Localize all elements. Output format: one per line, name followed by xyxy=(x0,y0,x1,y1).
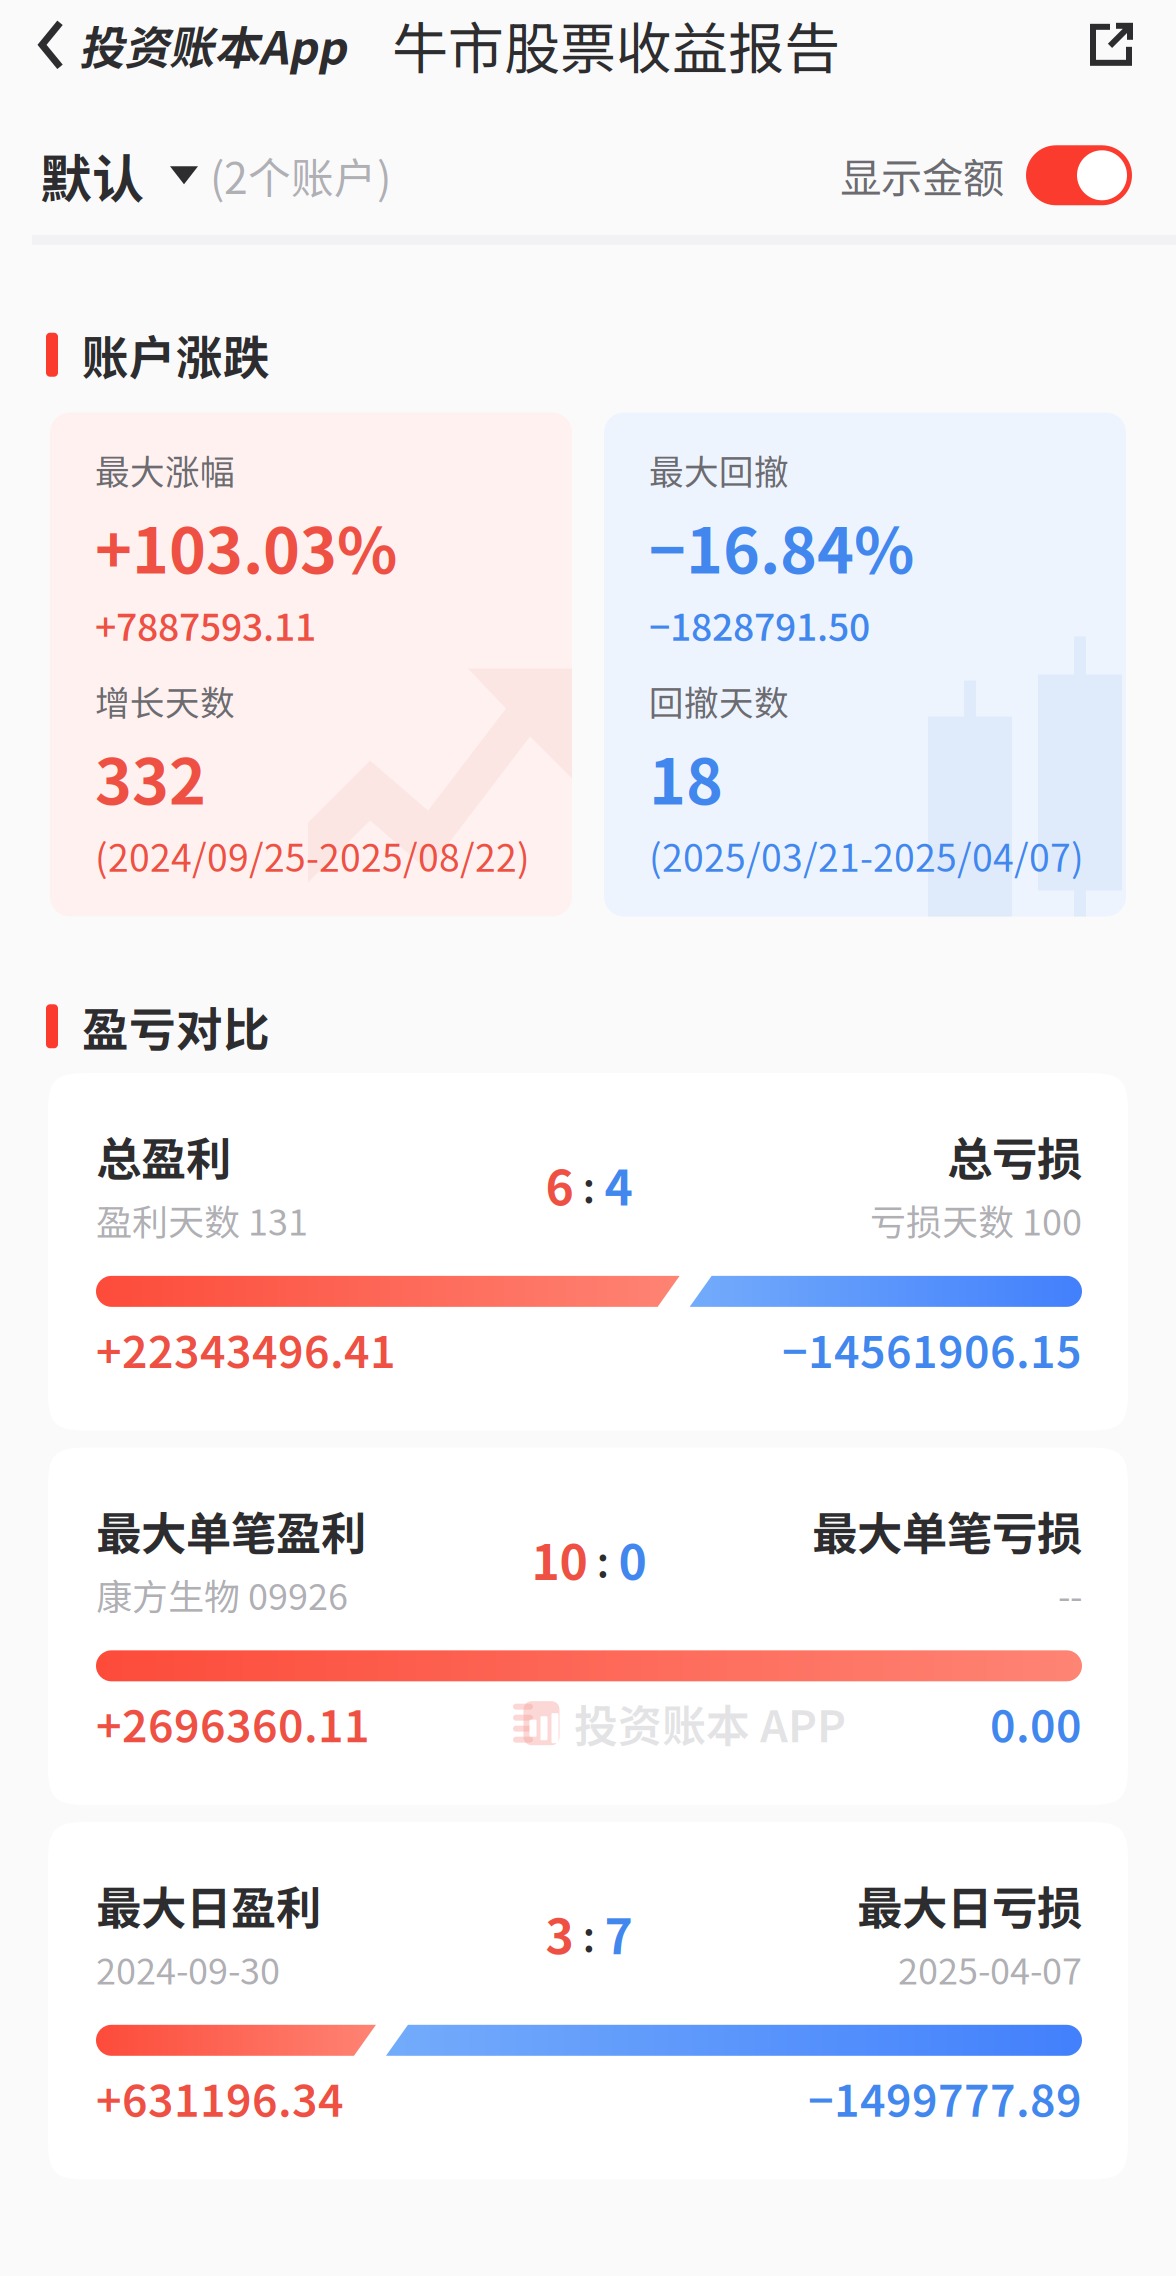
staticText: 2025-04-07 xyxy=(898,1943,1082,1995)
staticText: 最大单笔盈利 xyxy=(96,1498,366,1563)
staticText: −1499777.89 xyxy=(808,2066,1082,2129)
staticText: −1828791.50 xyxy=(649,597,870,652)
staticText: 4 xyxy=(604,1150,632,1219)
staticText: 7 xyxy=(604,1899,632,1968)
staticText: 投资账本App xyxy=(79,12,346,78)
button[interactable]: 默认 xyxy=(0,116,391,235)
button[interactable]: Share xyxy=(1064,6,1176,84)
staticText: 最大回撤 xyxy=(649,444,789,495)
staticText: 牛市股票收益报告 xyxy=(392,4,840,85)
staticText: 最大日亏损 xyxy=(857,1872,1082,1938)
staticText: -- xyxy=(1058,1568,1082,1620)
staticText: (2025/03/21-2025/04/07) xyxy=(649,828,1084,882)
button[interactable]: 显示金额 xyxy=(840,123,1176,227)
staticText: 亏损天数 100 xyxy=(870,1194,1082,1246)
button[interactable]: 投资账本App xyxy=(0,0,356,90)
staticText: 3 xyxy=(545,1899,573,1968)
staticText: 增长天数 xyxy=(95,675,235,726)
staticText: 默认 xyxy=(40,138,144,213)
staticText: 332 xyxy=(95,732,206,822)
staticText: : xyxy=(582,1902,595,1964)
staticText: 10 xyxy=(531,1524,587,1594)
staticText: (2024/09/25-2025/08/22) xyxy=(95,828,530,882)
staticText: (2个账户) xyxy=(210,144,391,206)
staticText: 投资账本 APP xyxy=(574,1691,846,1755)
staticText: 总盈利 xyxy=(96,1123,231,1189)
staticText: 2024-09-30 xyxy=(96,1943,280,1995)
staticText: +7887593.11 xyxy=(95,597,316,652)
staticText: +22343496.41 xyxy=(96,1317,396,1381)
staticText: 18 xyxy=(649,732,723,822)
staticText: −16.84% xyxy=(649,501,914,591)
staticText: 回撤天数 xyxy=(649,675,789,726)
staticText: +631196.34 xyxy=(96,2066,344,2129)
staticText: +2696360.11 xyxy=(96,1691,370,1755)
staticText: 0.00 xyxy=(990,1691,1082,1755)
staticText: +103.03% xyxy=(95,501,397,591)
staticText: 显示金额 xyxy=(840,145,1004,205)
staticText: 康方生物 09926 xyxy=(96,1568,348,1620)
staticText: : xyxy=(596,1528,609,1590)
staticText: 盈利天数 131 xyxy=(96,1194,308,1246)
staticText: 0 xyxy=(618,1524,646,1594)
staticText: 最大涨幅 xyxy=(95,444,235,495)
staticText: 总亏损 xyxy=(947,1123,1082,1189)
staticText: −14561906.15 xyxy=(782,1317,1082,1381)
staticText: 盈亏对比 xyxy=(82,992,270,1060)
staticText: 6 xyxy=(545,1150,573,1219)
staticText: 最大单笔亏损 xyxy=(812,1498,1082,1563)
staticText: : xyxy=(582,1154,595,1215)
staticText: 账户涨跌 xyxy=(82,321,270,388)
staticText: 最大日盈利 xyxy=(96,1872,321,1938)
